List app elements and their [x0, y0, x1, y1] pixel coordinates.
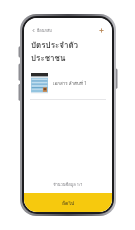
staticText: ถัดไป	[62, 199, 75, 207]
staticText: ย้อนกลับ	[37, 27, 52, 33]
button[interactable]: ย้อนกลับ	[30, 26, 53, 34]
button[interactable]: เอกสาร ลำดับที่ 1	[24, 70, 112, 97]
staticText: บัตรประจำตัวประชาชน	[31, 39, 105, 65]
staticText: เอกสาร ลำดับที่ 1	[53, 80, 87, 87]
staticText: จำนวนข้อมูล 1/1	[24, 181, 112, 187]
button[interactable]: ถัดไป	[24, 193, 112, 212]
button[interactable]: Add document	[96, 25, 106, 35]
